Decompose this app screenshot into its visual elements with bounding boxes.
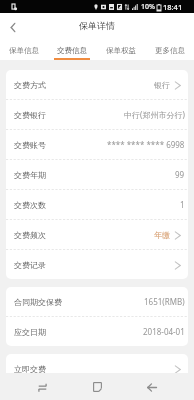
staticText: 银行 bbox=[154, 80, 170, 90]
staticText: 立即交费 bbox=[14, 364, 46, 374]
staticText: 1651(RMB) bbox=[144, 296, 185, 307]
button[interactable]: 交费记录 bbox=[6, 250, 188, 279]
staticText: 更多信息 bbox=[155, 46, 185, 55]
button[interactable]: 交费信息 bbox=[48, 38, 96, 60]
staticText: 交费频次 bbox=[14, 230, 46, 240]
staticText: 应交日期 bbox=[14, 327, 46, 337]
button[interactable]: 交费次数 bbox=[6, 190, 188, 219]
button[interactable]: 交费方式 bbox=[6, 70, 188, 99]
staticText: 保单信息 bbox=[9, 46, 39, 55]
staticText: 交费银行 bbox=[14, 110, 46, 120]
button[interactable]: Back bbox=[0, 13, 25, 38]
button[interactable]: Recent apps bbox=[29, 374, 55, 400]
staticText: 99 bbox=[175, 169, 185, 180]
button[interactable]: Home bbox=[84, 374, 110, 400]
staticText: 中行(郑州市分行) bbox=[124, 109, 185, 120]
staticText: 18:41 bbox=[163, 2, 183, 12]
staticText: 年缴 bbox=[154, 230, 170, 240]
staticText: **** **** **** 6998 bbox=[107, 139, 185, 150]
button[interactable]: 交费年期 bbox=[6, 160, 188, 189]
button[interactable]: 交费频次 bbox=[6, 220, 188, 249]
staticText: 1 bbox=[180, 199, 185, 210]
button[interactable]: 应交日期 bbox=[6, 317, 188, 346]
staticText: 交费次数 bbox=[14, 200, 46, 210]
button[interactable]: Back bbox=[139, 374, 165, 400]
staticText: 保单详情 bbox=[79, 20, 115, 31]
staticText: 交费方式 bbox=[14, 80, 46, 90]
staticText: 交费账号 bbox=[14, 140, 46, 150]
staticText: 交费信息 bbox=[57, 46, 87, 55]
staticText: 2018-04-01 bbox=[143, 326, 185, 337]
button[interactable]: 保单权益 bbox=[96, 38, 145, 60]
button[interactable]: 保单信息 bbox=[0, 38, 48, 60]
staticText: 交费记录 bbox=[14, 260, 46, 270]
staticText: 交费年期 bbox=[14, 170, 46, 180]
staticText: 10% bbox=[141, 2, 155, 12]
button[interactable]: 立即交费 bbox=[6, 354, 188, 383]
staticText: 保单权益 bbox=[106, 46, 136, 55]
button[interactable]: 更多信息 bbox=[145, 38, 194, 60]
staticText: 合同期交保费 bbox=[14, 297, 62, 307]
button[interactable]: 合同期交保费 bbox=[6, 287, 188, 316]
button[interactable]: 交费银行 bbox=[6, 100, 188, 129]
button[interactable]: 交费账号 bbox=[6, 130, 188, 159]
